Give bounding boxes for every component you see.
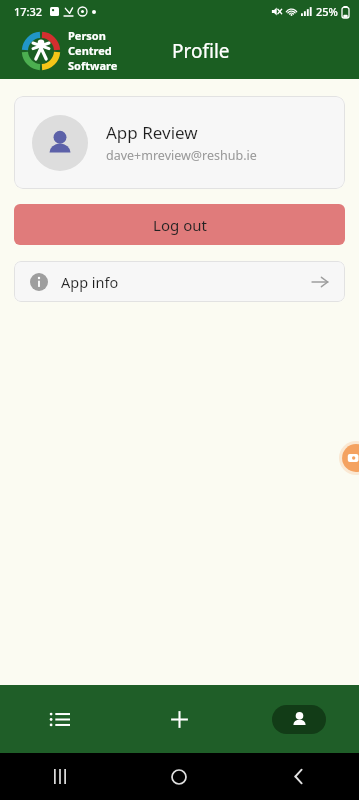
- button[interactable]: App Review: [14, 96, 345, 189]
- staticText: 17:32: [14, 4, 43, 19]
- staticText: dave+mreview@reshub.ie: [106, 147, 257, 164]
- button[interactable]: App info: [14, 261, 345, 302]
- staticText: Person: [68, 28, 106, 43]
- button[interactable]: Add: [119, 685, 239, 753]
- button[interactable]: Profile: [239, 685, 359, 753]
- staticText: App info: [61, 272, 119, 292]
- staticText: Profile: [172, 38, 230, 64]
- staticText: 25%: [316, 4, 338, 19]
- button[interactable]: List: [0, 685, 119, 753]
- staticText: Centred: [68, 43, 112, 58]
- staticText: Software: [68, 58, 118, 73]
- staticText: Log out: [153, 215, 207, 235]
- staticText: App Review: [106, 121, 198, 144]
- button[interactable]: Log out: [14, 204, 345, 245]
